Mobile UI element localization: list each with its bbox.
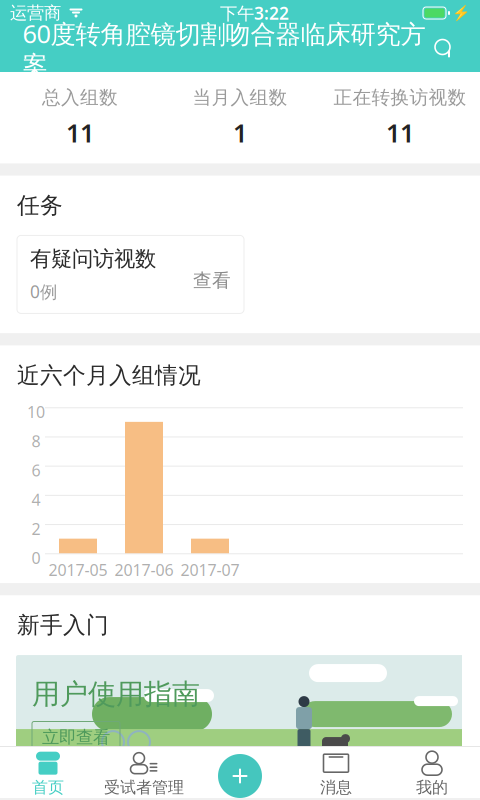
button[interactable]: 有疑问访视数	[17, 235, 244, 313]
staticText: 11	[386, 116, 414, 149]
staticText: 运营商	[10, 2, 61, 24]
staticText: 用户使用指南	[32, 677, 200, 711]
staticText: 2017-07	[180, 559, 239, 580]
button[interactable]: 我的	[384, 746, 480, 798]
button[interactable]: 新建	[214, 750, 266, 800]
staticText: 新手入门	[17, 611, 109, 639]
staticText: 当月入组数	[192, 86, 287, 109]
staticText: 我的	[416, 778, 448, 797]
staticText: 2017-06	[114, 559, 173, 580]
staticText: 受试者管理	[104, 778, 184, 797]
staticText: 查看	[193, 269, 231, 292]
staticText: 0	[31, 547, 40, 568]
button[interactable]: 消息	[288, 746, 384, 798]
staticText: 立即查看	[42, 726, 110, 748]
staticText: 10	[27, 401, 45, 422]
staticText: 任务	[17, 192, 63, 219]
staticText: 11	[66, 116, 94, 149]
staticText: 正在转换访视数	[333, 86, 466, 109]
staticText: 1	[233, 116, 247, 149]
button[interactable]: 搜索	[431, 36, 457, 62]
button[interactable]: 首页	[0, 746, 96, 798]
staticText: 有疑问访视数	[30, 246, 156, 272]
staticText: 2017-05	[48, 559, 107, 580]
staticText: 下午3:22	[220, 1, 289, 24]
staticText: 4	[31, 489, 40, 510]
staticText: 8	[31, 430, 40, 452]
staticText: 2	[31, 518, 40, 539]
button[interactable]: 用户使用指南	[16, 655, 464, 773]
staticText: 总入组数	[42, 86, 118, 109]
staticText: ⚡	[452, 5, 470, 21]
staticText: 60度转角腔镜切割吻合器临床研究方案	[22, 17, 425, 81]
button[interactable]: 受试者管理	[96, 746, 192, 798]
staticText: 0例	[30, 280, 57, 303]
staticText: 近六个月入组情况	[17, 361, 201, 389]
staticText: 消息	[320, 778, 352, 797]
staticText: 6	[31, 460, 40, 481]
staticText: 首页	[32, 778, 64, 797]
